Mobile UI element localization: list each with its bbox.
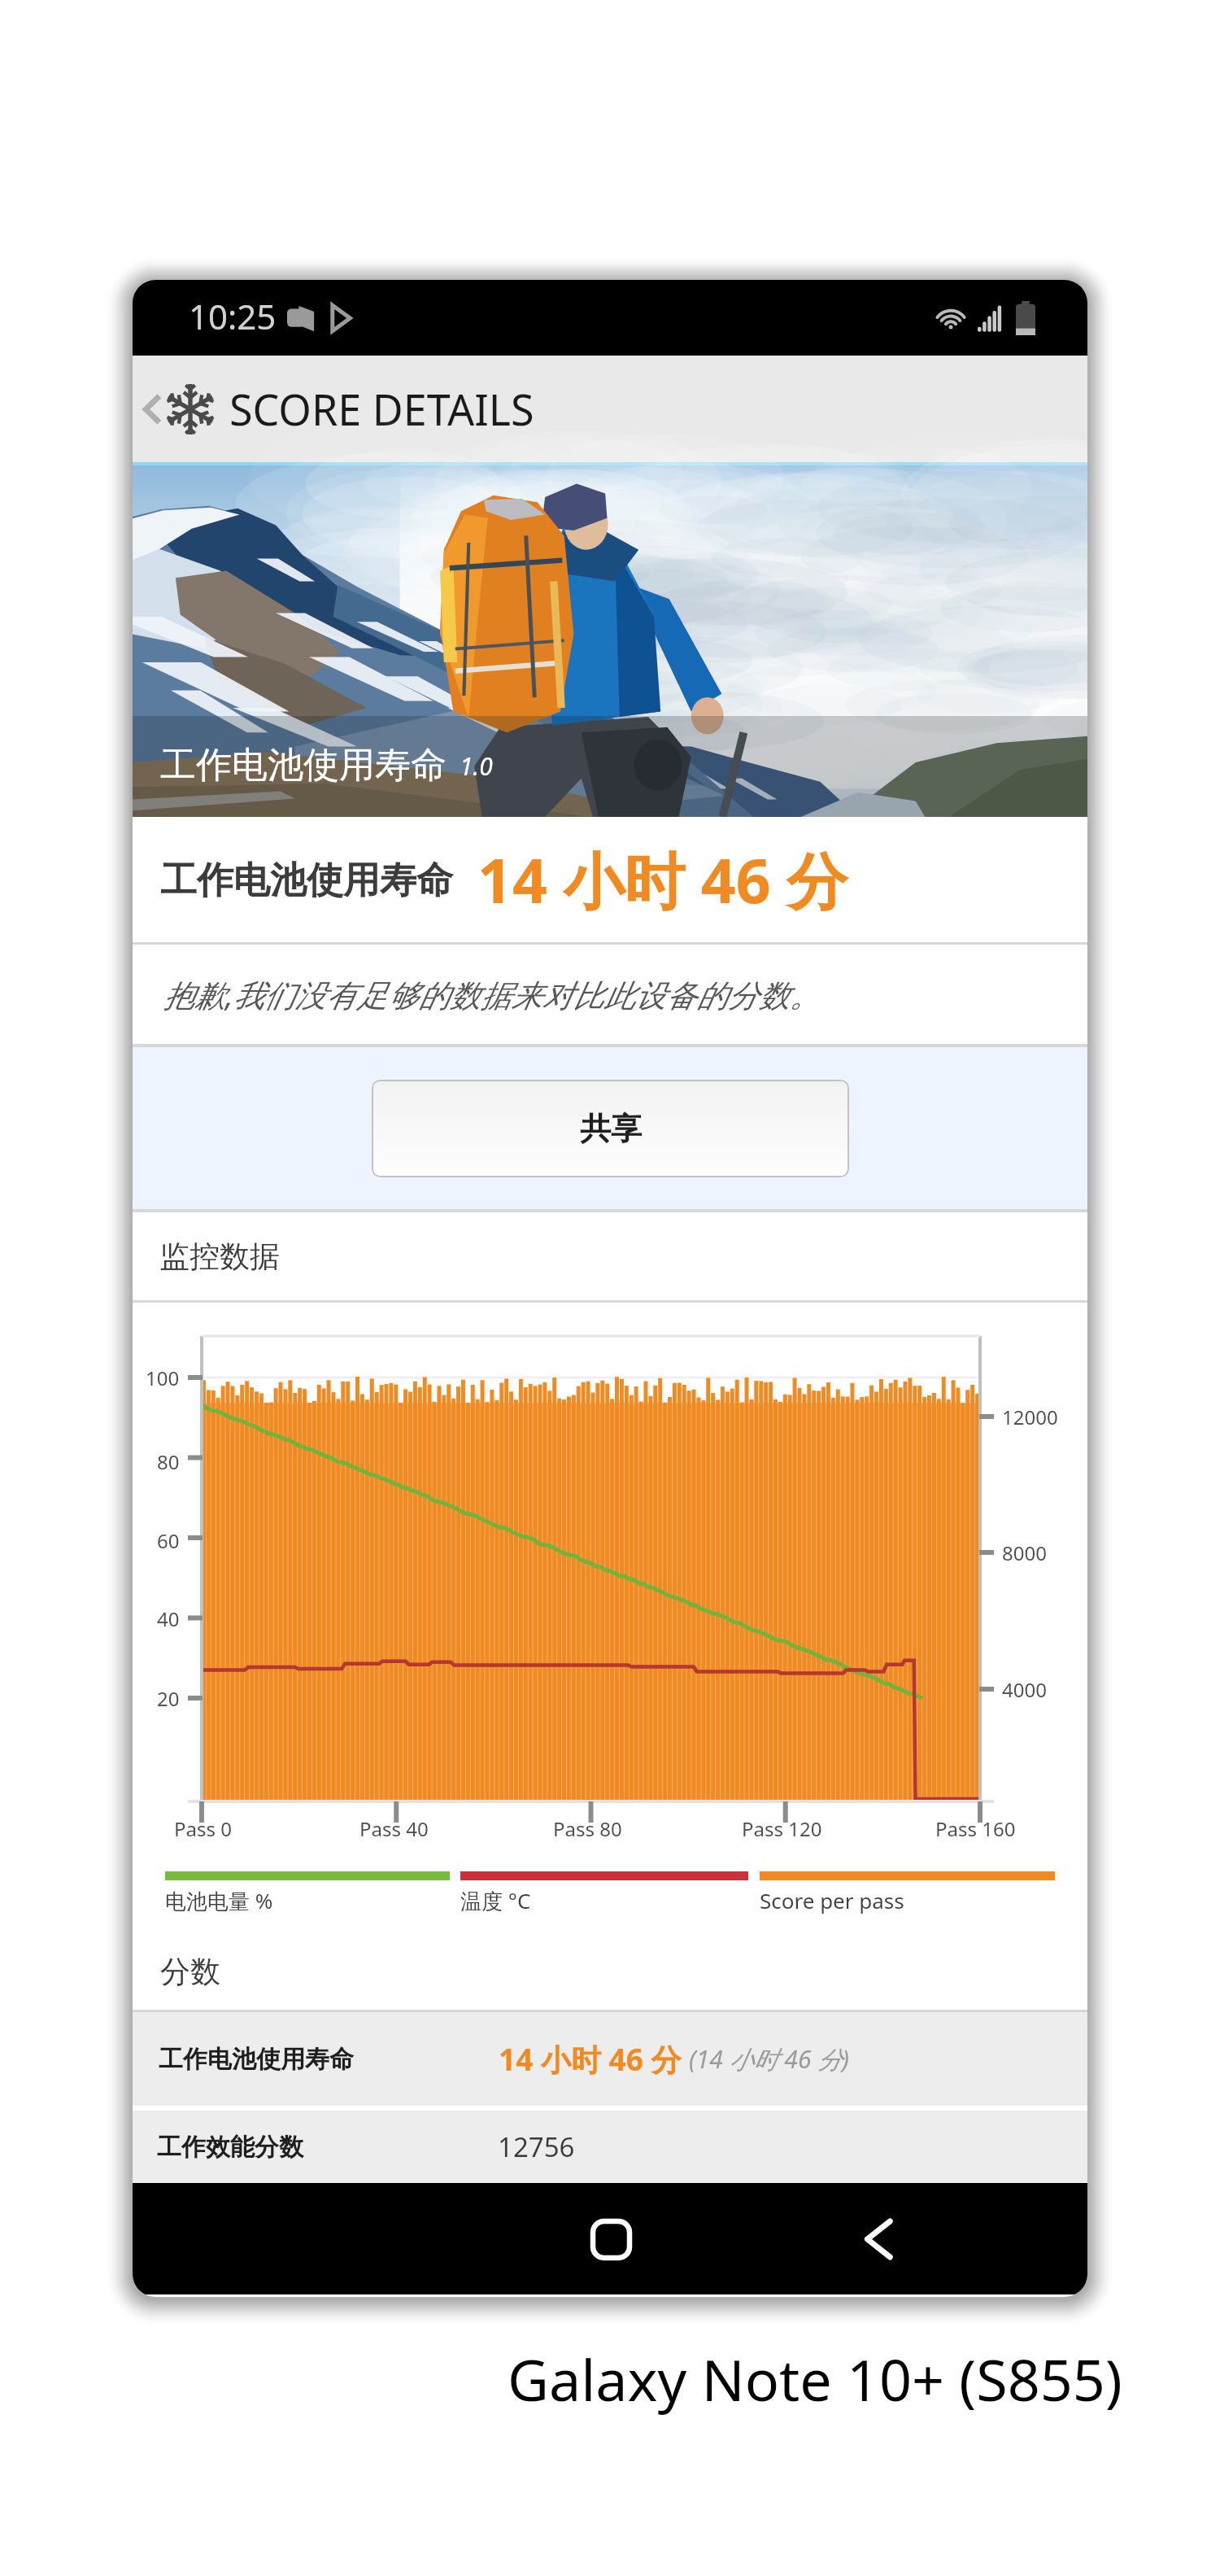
staticText: Galaxy Note 10+ (S855) xyxy=(508,2340,1122,2417)
button[interactable]: 共享 xyxy=(372,1080,849,1177)
staticText: 温度 °C xyxy=(460,1886,531,1915)
staticText: 共享 xyxy=(580,1109,642,1148)
staticText: 12000 xyxy=(1002,1404,1058,1430)
staticText: 40 xyxy=(157,1605,180,1632)
staticText: 10:25 xyxy=(189,293,277,339)
button[interactable]: Back xyxy=(141,380,534,438)
staticText: 80 xyxy=(157,1448,180,1475)
staticText: 8000 xyxy=(1002,1539,1047,1566)
staticText: 12756 xyxy=(498,2128,575,2165)
staticText: 20 xyxy=(157,1685,180,1712)
staticText: Pass 40 xyxy=(359,1815,429,1842)
staticText: 监控数据 xyxy=(159,1238,280,1276)
staticText: Pass 80 xyxy=(553,1815,622,1842)
staticText: 分数 xyxy=(160,1953,220,1991)
staticText: 14 小时 46 分 xyxy=(499,2038,682,2080)
staticText: 工作效能分数 xyxy=(157,2132,303,2163)
button[interactable]: 工作电池使用寿命 xyxy=(133,2012,1087,2106)
staticText: 14 小时 46 分 xyxy=(477,838,848,921)
button[interactable]: 工作效能分数 xyxy=(133,2111,1087,2183)
staticText: 工作电池使用寿命 xyxy=(160,858,453,904)
button[interactable]: Back xyxy=(834,2194,923,2284)
staticText: Pass 120 xyxy=(742,1815,822,1842)
staticText: 工作电池使用寿命 xyxy=(159,2044,354,2075)
staticText: 4000 xyxy=(1002,1676,1047,1703)
staticText: SCORE DETAILS xyxy=(229,380,534,438)
staticText: 电池电量 % xyxy=(165,1886,273,1915)
staticText: 1.0 xyxy=(460,749,493,783)
staticText: Pass 160 xyxy=(935,1815,1016,1842)
staticText: 60 xyxy=(157,1527,180,1554)
staticText: (14 小时 46 分) xyxy=(689,2042,849,2076)
staticText: 抱歉,我们没有足够的数据来对比此设备的分数。 xyxy=(163,973,821,1015)
button[interactable]: Home xyxy=(566,2194,656,2284)
staticText: 工作电池使用寿命 xyxy=(160,743,447,788)
staticText: Score per pass xyxy=(760,1886,904,1915)
staticText: 100 xyxy=(146,1364,180,1391)
staticText: Pass 0 xyxy=(174,1815,232,1842)
